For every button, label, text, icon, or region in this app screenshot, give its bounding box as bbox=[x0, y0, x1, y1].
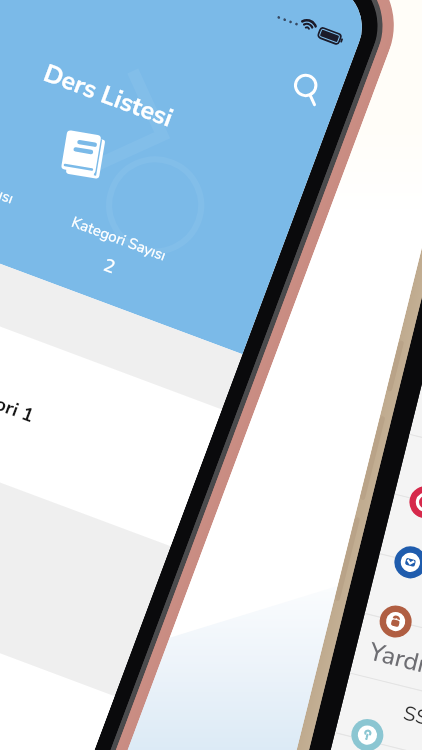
button[interactable]: SSS bbox=[336, 667, 422, 750]
button[interactable]: Kategori 1 bbox=[0, 251, 222, 546]
staticText: Kategori 1 bbox=[0, 373, 139, 467]
staticText: Kategori Sayısı bbox=[69, 212, 169, 266]
staticText: 2 bbox=[100, 253, 119, 280]
button[interactable]: Search bbox=[274, 55, 336, 117]
button[interactable]: Çıkış bbox=[394, 434, 422, 567]
button[interactable]: İletişim bbox=[379, 494, 422, 627]
staticText: Yardım bbox=[366, 635, 422, 686]
button[interactable]: Gizlilik bbox=[365, 554, 422, 686]
button[interactable]: Kategori 2 bbox=[0, 538, 115, 750]
staticText: Ders Listesi bbox=[39, 56, 178, 136]
staticText: SSS bbox=[401, 700, 422, 735]
staticText: Ders Sayısı bbox=[0, 164, 17, 209]
